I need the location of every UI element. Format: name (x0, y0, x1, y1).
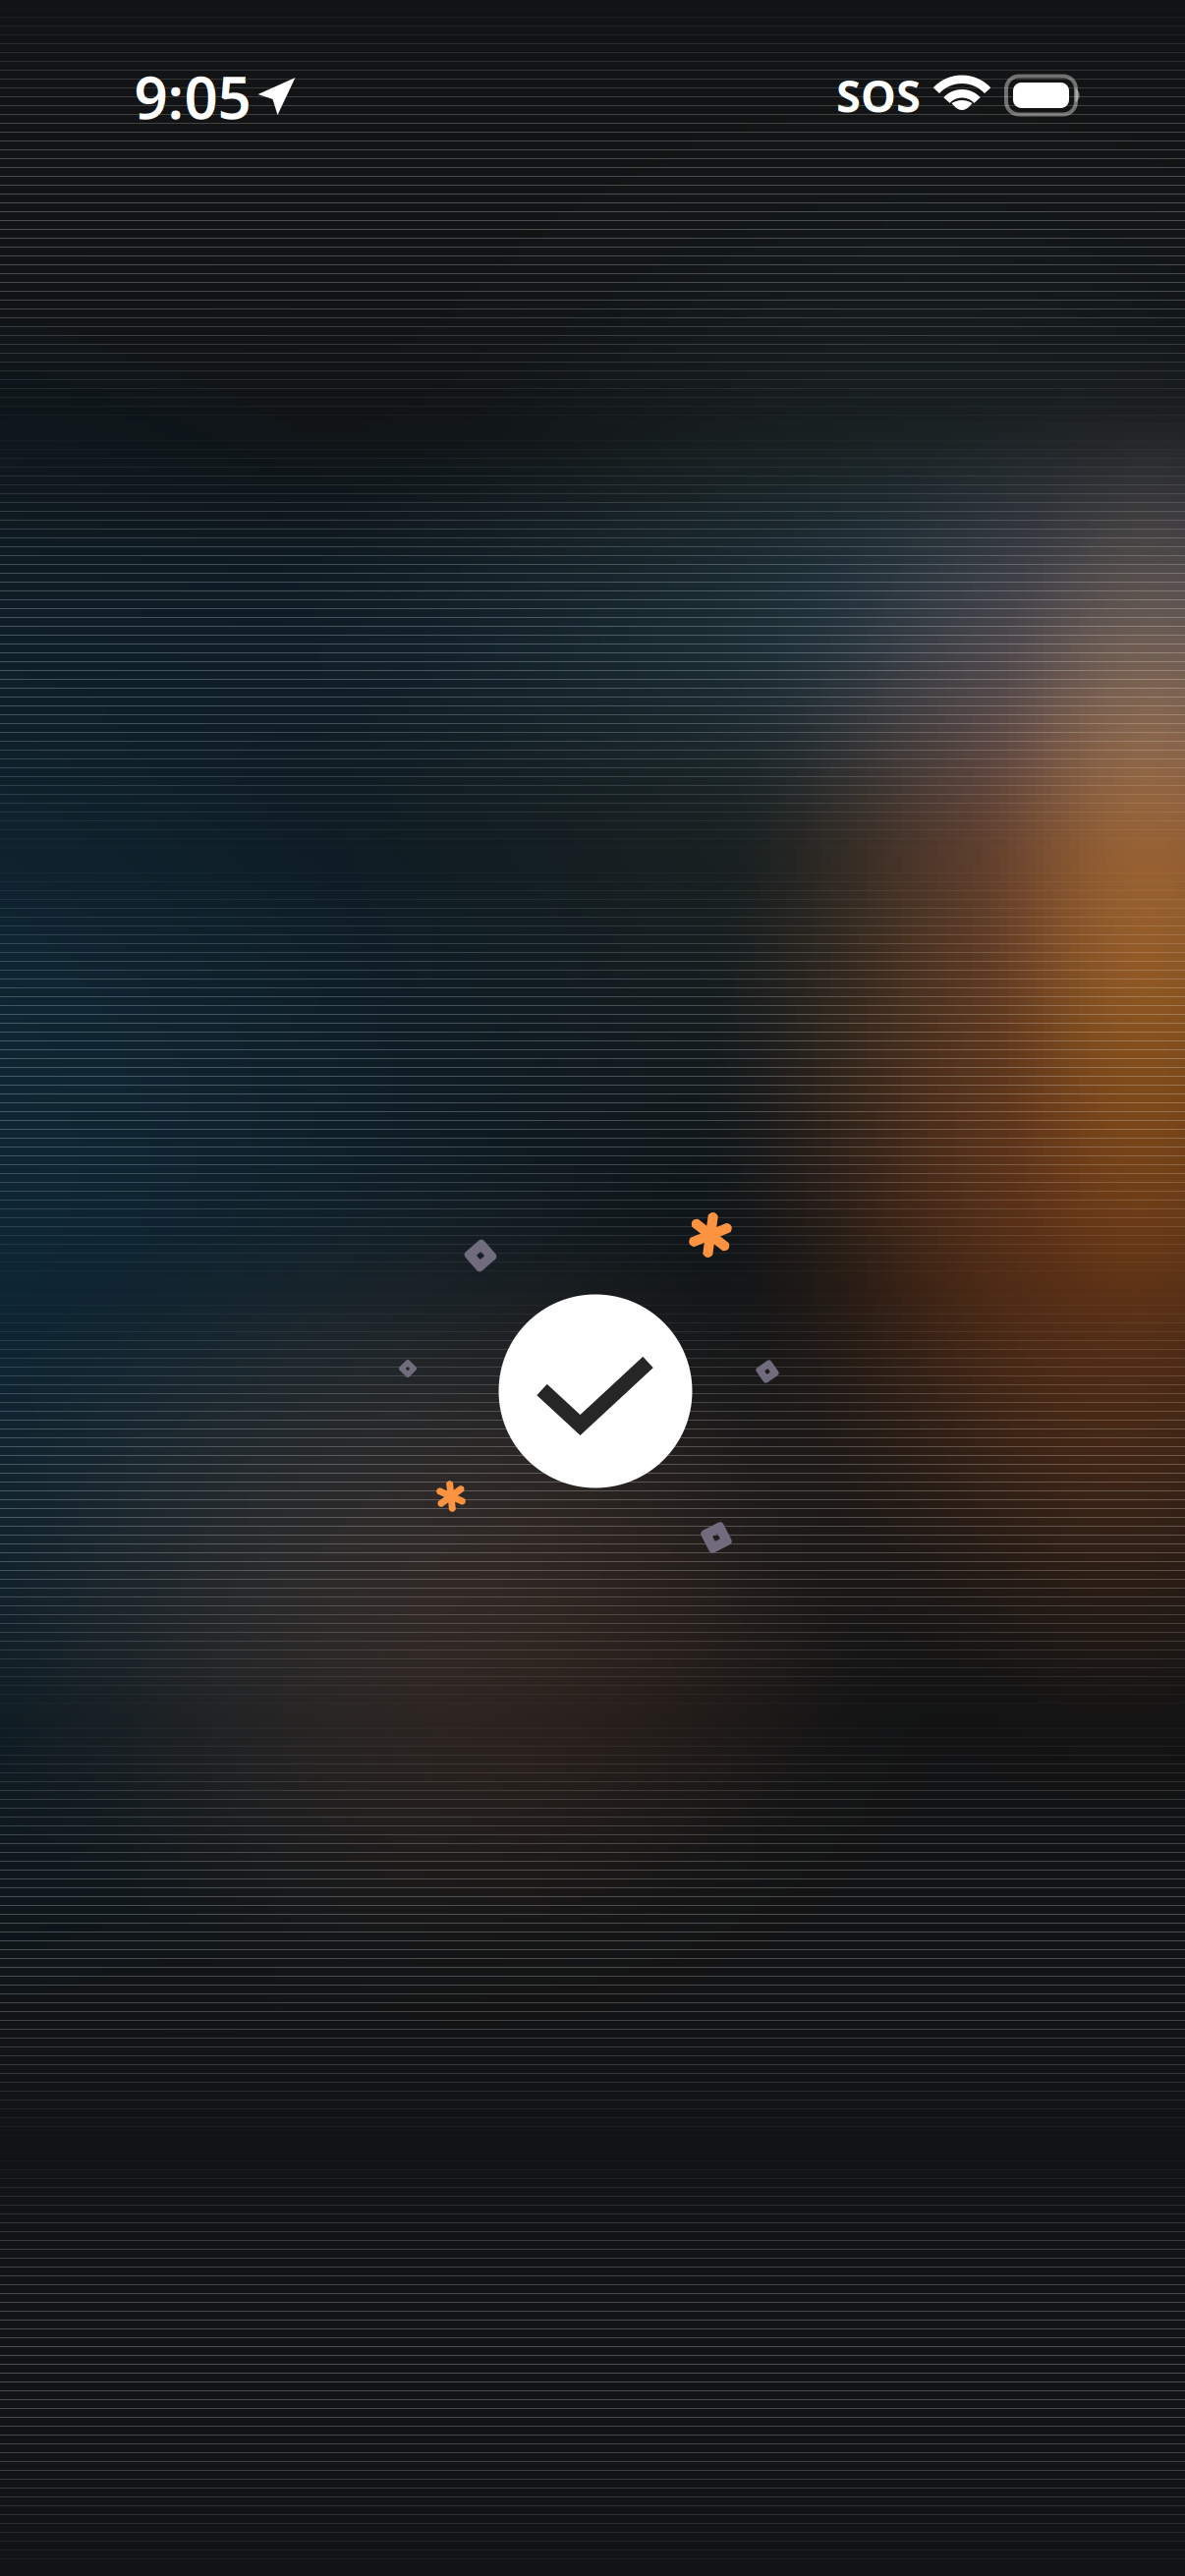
staticText: SOS (836, 66, 921, 125)
staticText: 9:05 (134, 57, 251, 135)
